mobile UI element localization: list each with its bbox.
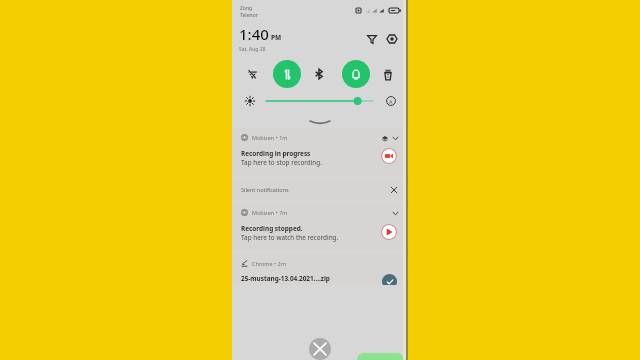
button[interactable]: Stop recording [381,148,397,164]
button[interactable]: Settings [384,31,399,46]
button[interactable] [232,203,408,251]
staticText: 1:40 [239,24,269,44]
button[interactable] [232,254,408,285]
staticText: A [389,98,393,105]
button[interactable]: Dismiss silent notifications [388,184,400,196]
button[interactable]: Expand notification [390,133,400,143]
staticText: Chrome • 2m [252,260,286,267]
staticText: Tap here to watch the recording. [241,233,339,242]
button[interactable]: Brightness [265,93,374,109]
button[interactable] [232,179,408,200]
staticText: Mobizen • 1m [252,134,288,141]
staticText: Recording in progress [241,149,311,158]
button[interactable]: Bluetooth off [309,64,329,84]
staticText: PM [271,33,282,42]
button[interactable]: Expand notification [390,208,400,218]
staticText: 25-mustang-13.04.2021....zip [241,274,330,283]
staticText: Mobizen • 7m [252,209,288,216]
button[interactable]: Clear all notifications [309,338,331,360]
button[interactable]: Auto brightness [384,94,398,108]
staticText: Tap here to stop recording. [241,158,322,167]
staticText: Sat, Aug 28 [239,46,266,53]
staticText: Telenor [240,12,258,19]
button[interactable]: Notification options [380,133,390,143]
staticText: Zong [240,5,253,12]
button[interactable]: Wi-Fi off [242,64,262,84]
button[interactable]: Flashlight [378,64,398,84]
button[interactable]: Mobile data on [273,60,301,88]
staticText: Recording stopped. [241,224,303,233]
button[interactable]: Download complete [382,274,397,285]
staticText: Silent notifications [241,186,289,193]
button[interactable]: Sound on [342,60,370,88]
button[interactable]: Filter notifications [364,31,379,46]
button[interactable]: Play recording [381,224,397,240]
button[interactable] [232,128,408,175]
